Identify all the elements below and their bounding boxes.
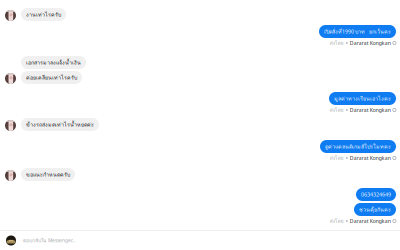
staticText: เปิดสั่งที่1990 บาท ยกเว้นคะ: [324, 27, 391, 36]
staticText: Dararat Kongkan: [350, 39, 391, 46]
button[interactable]: ค่อยเคลียนเท่าไรครับ: [21, 71, 82, 84]
button[interactable]: เปิดสั่งที่1990 บาท ยกเว้นคะ: [319, 25, 396, 38]
button[interactable]: ส่งโดย: [330, 218, 396, 224]
button[interactable]: เอกสารมาลงแจ้งน้ำเงิน: [21, 56, 86, 69]
button[interactable]: ตอบกลับใน Messenger…: [0, 231, 400, 250]
button[interactable]: ส่งโดย: [330, 40, 396, 46]
button[interactable]: ดูค่าแคลนด์เกมส์โปรโมทคะ: [320, 140, 396, 153]
button[interactable]: ชวนคุ้ยกันคะ: [354, 203, 396, 216]
staticText: ค่อยเคลียนเท่าไรครับ: [26, 73, 77, 82]
staticText: Dararat Kongkan: [350, 154, 391, 161]
staticText: ขอแนะกำหนดครับ: [26, 170, 70, 179]
button[interactable]: ข้างรถส่งมดเท่าไรน้ำหยดค่ะ: [21, 118, 99, 131]
staticText: เอกสารมาลงแจ้งน้ำเงิน: [26, 58, 81, 67]
button[interactable]: มูลค่าทางเรียนเอาไงคะ: [329, 92, 396, 105]
button[interactable]: Sender profile photo: [5, 170, 16, 181]
button[interactable]: ส่งโดย: [330, 155, 396, 161]
staticText: ตอบกลับใน Messenger…: [23, 237, 76, 244]
button[interactable]: 0634324649: [356, 188, 396, 201]
staticText: ส่งโดย: [330, 106, 344, 114]
staticText: ข้างรถส่งมดเท่าไรน้ำหยดค่ะ: [26, 120, 94, 129]
button[interactable]: ขอแนะกำหนดครับ: [21, 168, 75, 181]
staticText: งานเท่าไรครับ: [26, 10, 61, 19]
staticText: ส่งโดย: [330, 217, 344, 225]
staticText: มูลค่าทางเรียนเอาไงคะ: [334, 94, 391, 103]
staticText: ดูค่าแคลนด์เกมส์โปรโมทคะ: [325, 142, 391, 151]
staticText: ส่งโดย: [330, 154, 344, 162]
button[interactable]: งานเท่าไรครับ: [21, 8, 66, 21]
staticText: ชวนคุ้ยกันคะ: [359, 205, 391, 214]
button[interactable]: ส่งโดย: [330, 107, 396, 113]
button[interactable]: Sender profile photo: [5, 10, 16, 21]
staticText: 0634324649: [361, 191, 391, 198]
staticText: ส่งโดย: [330, 39, 344, 47]
staticText: Dararat Kongkan: [350, 217, 391, 224]
button[interactable]: Sender profile photo: [5, 73, 16, 84]
button[interactable]: Sender profile photo: [5, 120, 16, 131]
staticText: Dararat Kongkan: [350, 106, 391, 113]
